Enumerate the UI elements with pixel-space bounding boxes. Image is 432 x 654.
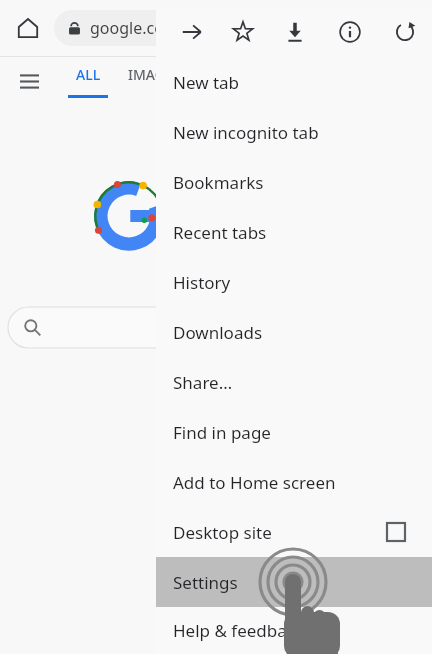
staticText: Help & feedback <box>173 619 305 642</box>
button[interactable]: Menu <box>12 64 46 98</box>
button[interactable]: Recent tabs <box>156 207 432 257</box>
staticText: New tab <box>173 71 240 94</box>
button[interactable]: History <box>156 257 432 307</box>
staticText: Settings <box>173 571 238 594</box>
staticText: ALL <box>76 65 101 84</box>
staticText: History <box>173 271 231 294</box>
button[interactable]: Share… <box>156 357 432 407</box>
button[interactable]: New tab <box>156 57 432 107</box>
staticText: Bookmarks <box>173 171 264 194</box>
button[interactable]: Bookmark <box>225 14 261 50</box>
button[interactable]: Downloads <box>156 307 432 357</box>
button[interactable]: Page info <box>332 14 368 50</box>
staticText: Find in page <box>173 421 271 444</box>
button[interactable]: New incognito tab <box>156 107 432 157</box>
button[interactable]: Desktop site <box>156 507 432 557</box>
button[interactable]: ALL <box>64 57 112 105</box>
button[interactable]: Download <box>277 14 313 50</box>
staticText: Desktop site <box>173 521 272 544</box>
staticText: Share… <box>173 371 233 394</box>
button[interactable]: Home <box>10 10 46 46</box>
button[interactable]: Help & feedback <box>156 607 432 654</box>
staticText: Add to Home screen <box>173 471 336 494</box>
staticText: Recent tabs <box>173 221 267 244</box>
staticText: google.com <box>90 17 179 39</box>
button[interactable]: IMAGES <box>128 57 181 105</box>
button[interactable]: Forward <box>174 14 210 50</box>
staticText: New incognito tab <box>173 121 319 144</box>
staticText: IMAGES <box>128 65 181 84</box>
button[interactable]: Bookmarks <box>156 157 432 207</box>
button[interactable]: Add to Home screen <box>156 457 432 507</box>
button[interactable] <box>8 307 298 348</box>
staticText: Downloads <box>173 321 263 344</box>
button[interactable]: Reload <box>387 14 423 50</box>
button[interactable]: google.com <box>54 10 284 46</box>
button[interactable]: Settings <box>156 557 432 607</box>
button[interactable]: Find in page <box>156 407 432 457</box>
